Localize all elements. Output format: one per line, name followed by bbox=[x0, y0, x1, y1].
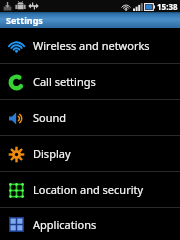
other: Sound bbox=[8, 110, 25, 127]
other: Applications bbox=[9, 217, 24, 232]
staticText: Display bbox=[33, 146, 71, 161]
button[interactable]: Display bbox=[0, 136, 180, 171]
staticText: Applications bbox=[33, 217, 97, 232]
button[interactable]: Wireless and networks bbox=[0, 28, 180, 63]
button[interactable]: Location and security bbox=[0, 172, 180, 207]
staticText: Wireless and networks bbox=[33, 38, 150, 53]
button[interactable]: Call settings bbox=[0, 64, 180, 99]
button[interactable]: Applications bbox=[0, 208, 180, 240]
staticText: Sound bbox=[33, 110, 67, 125]
staticText: Call settings bbox=[33, 74, 96, 89]
other: Location and security bbox=[8, 182, 25, 199]
staticText: Settings bbox=[6, 14, 43, 26]
button[interactable]: Sound bbox=[0, 100, 180, 135]
other: Wireless and networks bbox=[8, 38, 25, 55]
staticText: 15:38 bbox=[157, 1, 178, 12]
other: Display bbox=[8, 146, 25, 163]
staticText: Location and security bbox=[33, 182, 144, 197]
other: Call settings bbox=[8, 74, 25, 91]
